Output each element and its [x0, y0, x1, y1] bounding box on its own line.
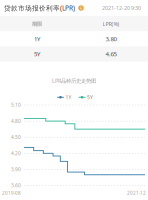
staticText: 2021-12-20 9:30 [102, 4, 141, 12]
button[interactable]: 利率说明 [78, 5, 84, 11]
staticText: 2021-12 [127, 190, 146, 196]
staticText: 2019-08 [2, 190, 21, 196]
staticText: 5Y [87, 94, 93, 100]
staticText: 4.65 [105, 50, 116, 58]
staticText: 1Y [34, 35, 40, 43]
staticText: 1Y [65, 94, 71, 100]
staticText: 期限 [32, 21, 42, 27]
staticText: 4.80 [11, 118, 21, 124]
staticText: 3.60 [11, 182, 21, 189]
staticText: 5.10 [11, 102, 21, 108]
staticText: 3.80 [105, 35, 116, 43]
staticText: 贷款市场报价利率(LPR) [4, 3, 75, 13]
staticText: 4.20 [11, 150, 21, 156]
staticText: 4.50 [11, 134, 21, 140]
staticText: LPR(%) [102, 20, 119, 28]
staticText: 3.90 [11, 166, 21, 173]
staticText: LPR品种历史走势图 [52, 77, 96, 84]
staticText: 5Y [34, 50, 40, 58]
